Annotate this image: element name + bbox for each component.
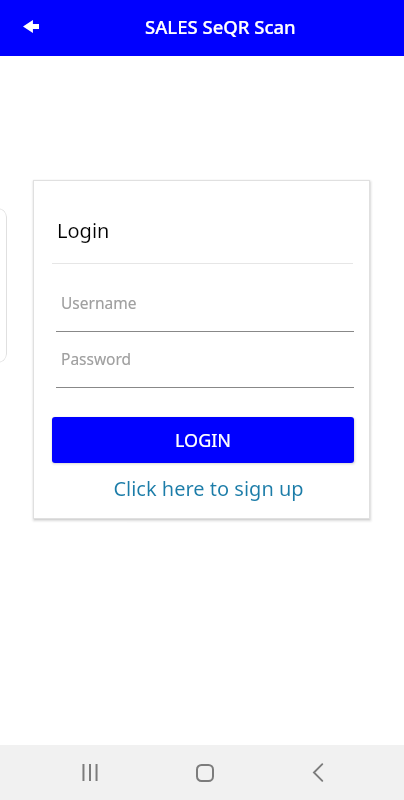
button[interactable]: Click here to sign up (57, 473, 359, 503)
button[interactable]: Recent apps (62, 745, 118, 800)
staticText: Password (61, 348, 132, 369)
staticText: Username (61, 292, 137, 313)
button[interactable]: Username (56, 284, 354, 332)
button[interactable]: Password (56, 340, 354, 388)
staticText: Click here to sign up (113, 475, 304, 502)
button[interactable]: LOGIN (52, 417, 354, 463)
button[interactable]: Back (290, 745, 346, 800)
button[interactable]: Home (177, 745, 233, 800)
staticText: Login (57, 217, 110, 244)
button[interactable]: Navigate up (8, 4, 53, 49)
staticText: LOGIN (175, 428, 232, 453)
staticText: SALES SeQR Scan (145, 14, 296, 39)
